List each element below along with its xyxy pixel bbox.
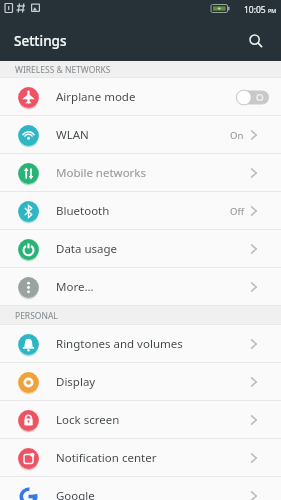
staticText: Ringtones and volumes (56, 336, 183, 352)
staticText: Off (230, 205, 244, 218)
button[interactable]: Mobile networks (0, 154, 281, 192)
staticText: WIRELESS & NETWORKS (15, 64, 111, 76)
staticText: 10:05 (244, 4, 266, 16)
button[interactable]: Data usage (0, 230, 281, 268)
staticText: On (230, 129, 244, 142)
button[interactable]: More... (0, 268, 281, 306)
staticText: Notification center (56, 450, 157, 466)
button[interactable]: Lock screen (0, 401, 281, 439)
staticText: Data usage (56, 241, 118, 257)
staticText: Mobile networks (56, 165, 147, 181)
button[interactable]: Bluetooth (0, 192, 281, 230)
button[interactable]: Google (0, 477, 281, 500)
button[interactable]: WLAN (0, 116, 281, 154)
staticText: Settings (14, 32, 67, 50)
staticText: Bluetooth (56, 203, 110, 219)
staticText: WLAN (56, 127, 89, 143)
staticText: More... (56, 279, 94, 295)
staticText: PM (268, 7, 277, 14)
staticText: Airplane mode (56, 89, 136, 105)
staticText: Lock screen (56, 412, 120, 428)
button[interactable]: Airplane mode (0, 78, 281, 116)
button[interactable]: Notification center (0, 439, 281, 477)
button[interactable]: Display (0, 363, 281, 401)
staticText: Display (56, 374, 96, 390)
staticText: Google (56, 488, 95, 500)
staticText: PERSONAL (15, 310, 58, 322)
button[interactable] (247, 32, 265, 50)
button[interactable]: Ringtones and volumes (0, 325, 281, 363)
